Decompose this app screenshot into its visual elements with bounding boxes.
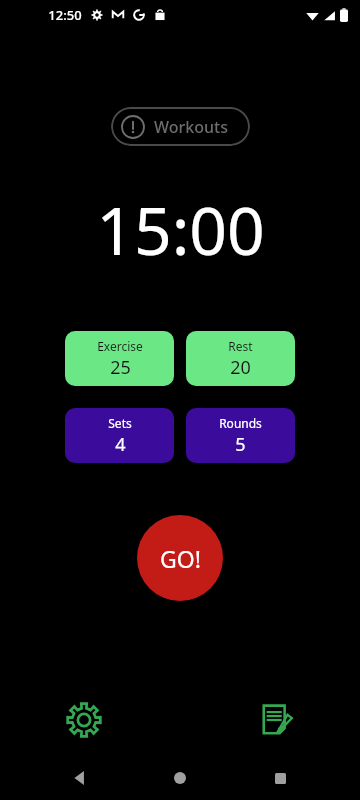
button[interactable]: GO! <box>137 515 223 601</box>
staticText: 20 <box>230 355 251 380</box>
staticText: Rounds <box>219 415 262 431</box>
staticText: Workouts <box>154 116 228 138</box>
staticText: 25 <box>110 355 131 380</box>
staticText: GO! <box>160 543 201 574</box>
staticText: Sets <box>108 415 132 431</box>
staticText: 15:00 <box>96 184 265 256</box>
staticText: Rest <box>228 338 253 354</box>
button[interactable]: Edit workout <box>250 694 302 746</box>
staticText: 4 <box>115 432 126 457</box>
button[interactable]: Sets <box>65 408 174 463</box>
staticText: 5 <box>235 432 246 457</box>
button[interactable]: Rounds <box>186 408 295 463</box>
button[interactable]: Exercise <box>65 331 174 386</box>
staticText: 12:50 <box>48 6 82 24</box>
button[interactable]: Settings <box>58 694 110 746</box>
button[interactable]: Home <box>160 758 200 798</box>
button[interactable]: Recent apps <box>260 758 300 798</box>
staticText: Exercise <box>97 338 143 354</box>
button[interactable]: Back <box>60 758 100 798</box>
button[interactable]: Workouts <box>111 107 250 146</box>
button[interactable]: Rest <box>186 331 295 386</box>
